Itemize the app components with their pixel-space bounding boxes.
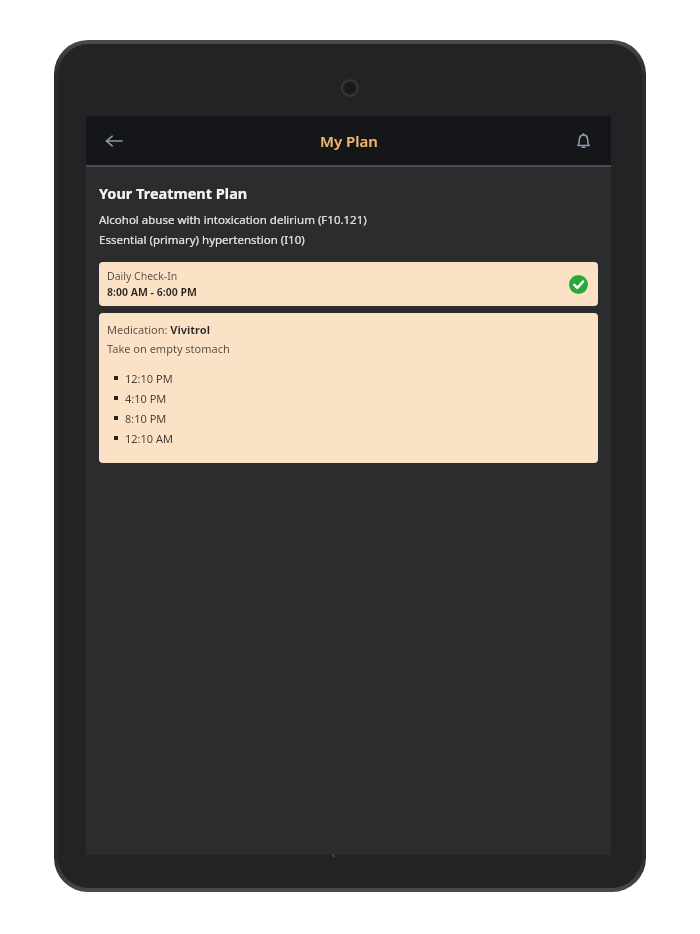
staticText: 4:10 PM xyxy=(125,391,167,406)
button[interactable]: Medication: Vivitrol xyxy=(99,313,598,463)
staticText: Alcohol abuse with intoxication delirium… xyxy=(99,212,367,228)
staticText: Daily Check-In xyxy=(107,269,178,283)
staticText: Your Treatment Plan xyxy=(99,183,248,203)
other: Completed xyxy=(569,275,588,294)
staticText: Essential (primary) hypertenstion (I10) xyxy=(99,232,305,248)
button[interactable]: Daily Check-In xyxy=(99,262,598,306)
staticText: 12:10 AM xyxy=(125,431,173,446)
button[interactable]: Back xyxy=(92,119,136,163)
staticText: 12:10 PM xyxy=(125,371,173,386)
staticText: Medication: Vivitrol xyxy=(107,322,210,337)
staticText: 8:00 AM - 6:00 PM xyxy=(107,285,197,299)
staticText: My Plan xyxy=(320,131,378,151)
staticText: Take on empty stomach xyxy=(107,341,230,356)
staticText: 8:10 PM xyxy=(125,411,167,426)
button[interactable]: Notifications xyxy=(561,119,605,163)
